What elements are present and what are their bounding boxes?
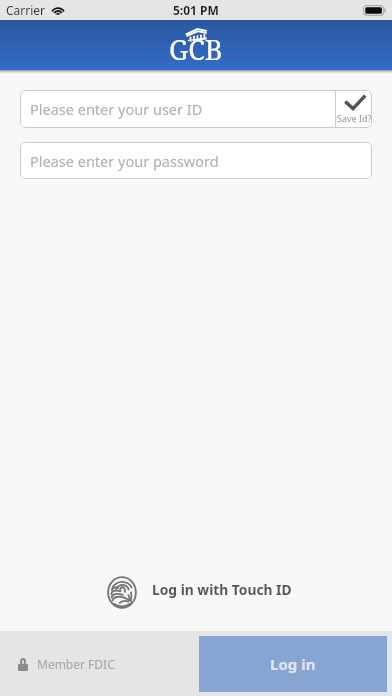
staticText: Carrier: [6, 2, 46, 18]
staticText: Please enter your user ID: [30, 99, 203, 119]
button[interactable]: Save Id: [336, 90, 372, 128]
staticText: 5:01 PM: [173, 2, 219, 18]
button[interactable]: Log in with Touch ID: [0, 570, 392, 615]
staticText: GCB: [169, 31, 223, 65]
staticText: Log in with Touch ID: [152, 580, 292, 599]
staticText: Member FDIC: [37, 656, 115, 672]
staticText: Log in: [270, 654, 316, 674]
button[interactable]: Please enter your password: [20, 142, 372, 179]
staticText: Please enter your password: [30, 151, 219, 171]
staticText: Save Id?: [337, 112, 372, 124]
button[interactable]: Log in: [199, 636, 387, 692]
